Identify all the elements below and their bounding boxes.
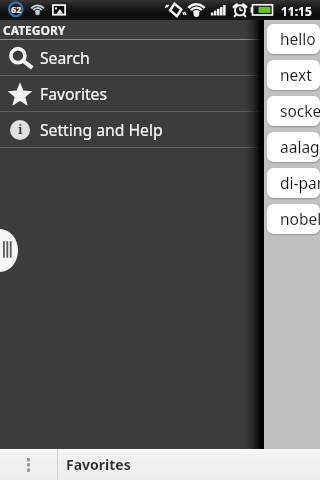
staticText: Favorites — [66, 455, 131, 474]
staticText: Setting and Help — [40, 119, 163, 140]
staticText: aalaga — [280, 136, 320, 157]
staticText: Favorites — [40, 83, 107, 104]
staticText: 11:15 — [281, 3, 312, 19]
staticText: i — [18, 120, 23, 138]
staticText: nobel — [280, 208, 320, 229]
button[interactable]: di-pandu — [267, 168, 320, 198]
staticText: next — [280, 64, 312, 85]
button[interactable]: socket — [267, 96, 320, 126]
staticText: hello — [280, 28, 316, 49]
button[interactable]: Favorites — [0, 76, 264, 111]
staticText: di-pandu — [280, 172, 320, 193]
button[interactable]: nobel — [267, 204, 320, 234]
staticText: Search — [40, 47, 90, 68]
staticText: CATEGORY — [3, 22, 66, 38]
button[interactable]: i — [0, 112, 264, 147]
staticText: socket — [280, 100, 320, 121]
button[interactable]: More options — [0, 449, 57, 480]
button[interactable]: Favorites — [58, 449, 131, 480]
staticText: 62 — [11, 3, 22, 15]
button[interactable]: Open navigation drawer — [0, 229, 18, 272]
button[interactable]: next — [267, 60, 320, 90]
button[interactable]: hello — [267, 24, 320, 54]
button[interactable]: Search — [0, 40, 264, 75]
button[interactable]: aalaga — [267, 132, 320, 162]
